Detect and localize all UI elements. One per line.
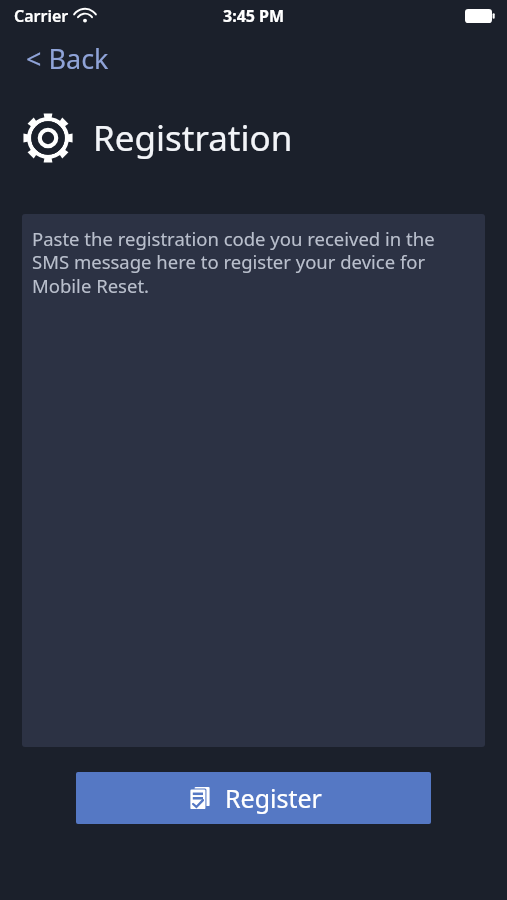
staticText: 3:45 PM <box>223 5 285 27</box>
staticText: < Back <box>26 40 109 77</box>
button[interactable]: < Back <box>20 35 115 82</box>
staticText: Paste the registration code you received… <box>32 226 471 299</box>
staticText: Registration <box>93 114 293 162</box>
button[interactable]: Register <box>76 772 431 824</box>
staticText: Carrier <box>14 5 69 27</box>
button[interactable]: Paste the registration code you received… <box>22 214 485 747</box>
staticText: Register <box>225 781 322 815</box>
other: Settings <box>19 109 77 167</box>
